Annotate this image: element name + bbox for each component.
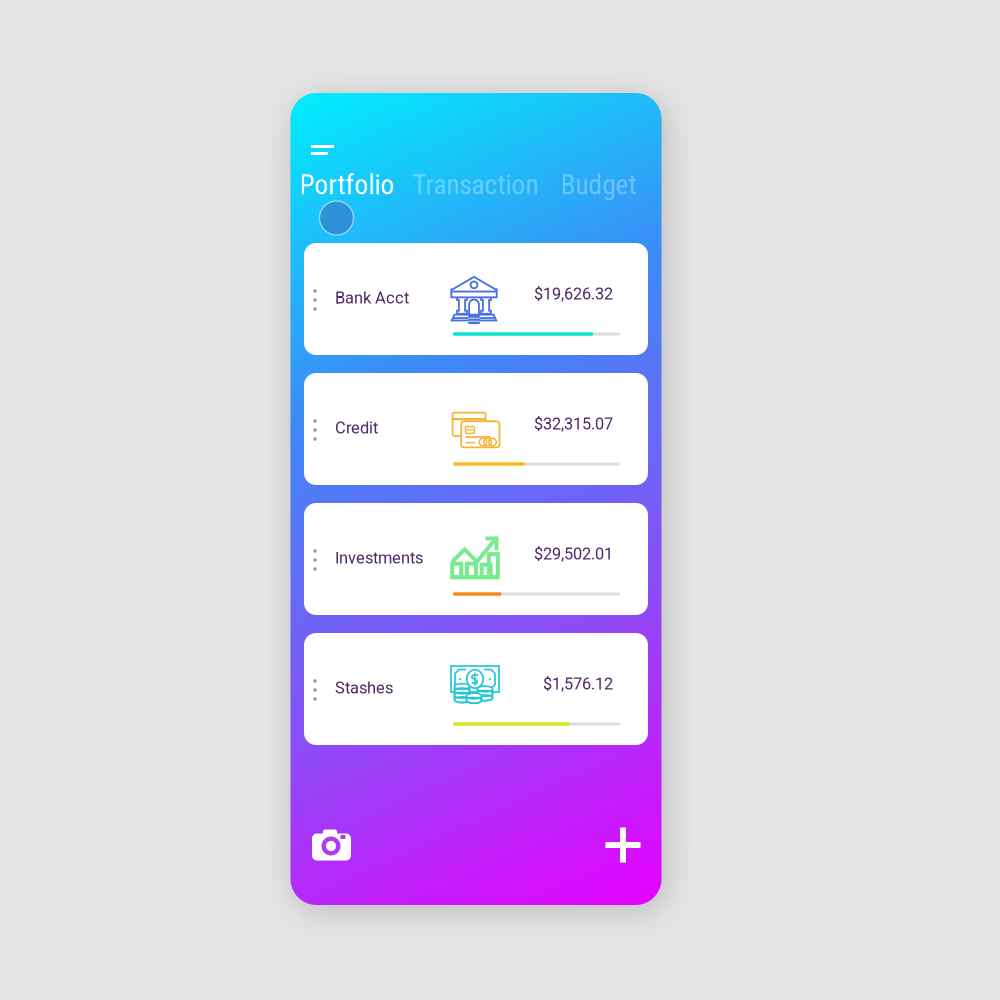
button[interactable]: Add account: [600, 823, 645, 867]
staticText: $29,502.01: [534, 544, 613, 564]
button[interactable]: Transaction: [412, 170, 538, 200]
staticText: Transaction: [412, 169, 538, 201]
button[interactable]: Bank Acct: [304, 243, 648, 355]
button[interactable]: Investments: [304, 503, 648, 615]
staticText: Budget: [560, 169, 636, 201]
button[interactable]: Portfolio: [299, 170, 394, 200]
button[interactable]: Camera: [309, 823, 353, 867]
button[interactable]: Budget: [560, 170, 636, 200]
staticText: Bank Acct: [335, 288, 409, 308]
staticText: $19,626.32: [534, 284, 613, 304]
staticText: $1,576.12: [543, 674, 613, 694]
button[interactable]: Credit: [304, 373, 648, 485]
staticText: Credit: [335, 418, 378, 438]
button[interactable]: Stashes: [304, 633, 648, 745]
staticText: $32,315.07: [534, 414, 613, 434]
staticText: Portfolio: [299, 169, 394, 201]
staticText: Stashes: [335, 678, 393, 698]
staticText: Investments: [335, 548, 423, 568]
button[interactable]: Menu: [307, 141, 337, 159]
